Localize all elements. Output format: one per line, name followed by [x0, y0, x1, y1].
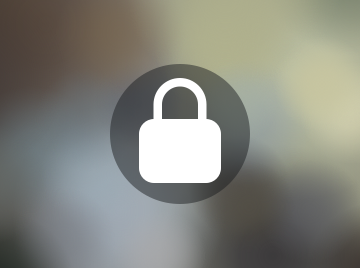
button[interactable]: Locked content [0, 0, 360, 268]
